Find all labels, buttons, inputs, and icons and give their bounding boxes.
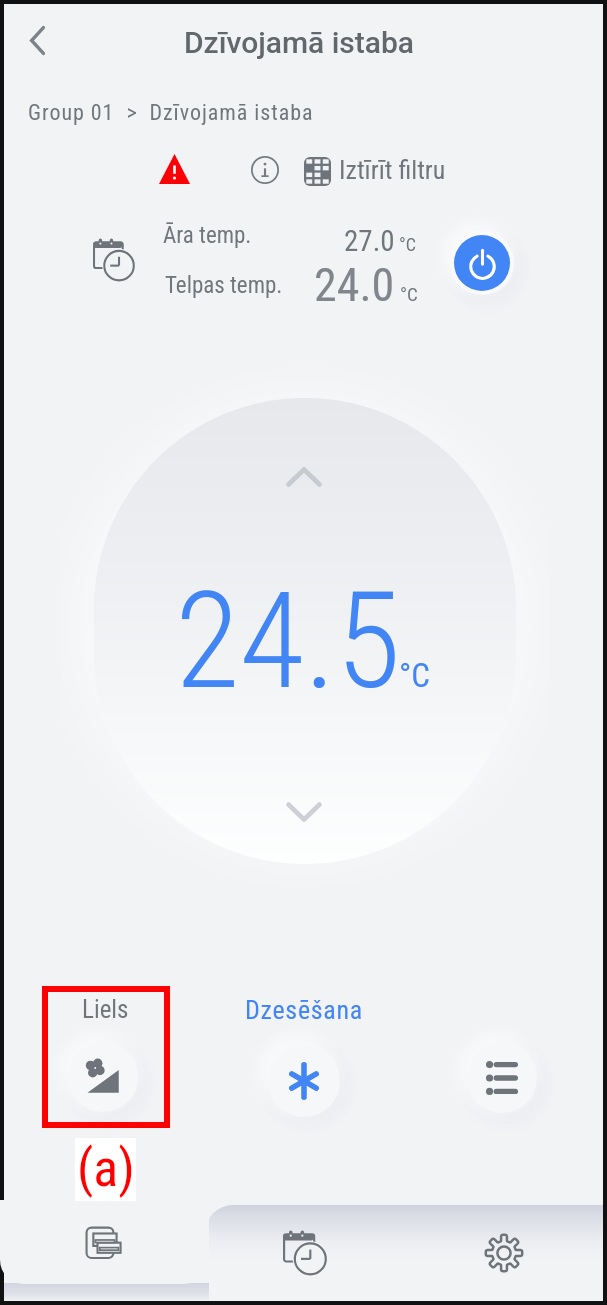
button[interactable]: Schedule [205, 1208, 404, 1298]
staticText: Āra temp. [163, 222, 252, 249]
button[interactable]: Information [243, 148, 287, 192]
staticText: 24.0 [314, 258, 395, 312]
button[interactable]: Liels [42, 986, 169, 1127]
button[interactable]: Decrease temperature [281, 796, 327, 828]
button[interactable]: Back [9, 12, 65, 68]
staticText: 27.0 [344, 224, 395, 258]
staticText: °C [400, 283, 418, 305]
staticText: Group 01 > Dzīvojamā istaba [28, 100, 314, 126]
staticText: °C [399, 656, 431, 695]
staticText: Telpas temp. [165, 272, 283, 299]
button[interactable]: Dzesēšana [236, 986, 372, 1117]
staticText: Iztīrīt filtru [339, 155, 446, 185]
button[interactable]: Fan speed [68, 1042, 138, 1112]
button[interactable]: Power [454, 235, 510, 291]
button[interactable]: Settings [404, 1208, 603, 1298]
button[interactable]: More options [467, 1043, 537, 1113]
staticText: Dzesēšana [245, 995, 363, 1025]
button[interactable]: Devices [4, 1205, 205, 1283]
staticText: Dzīvojamā istaba [184, 25, 414, 60]
staticText: 24.5 [175, 564, 401, 720]
staticText: °C [399, 234, 416, 255]
staticText: (a) [77, 1138, 135, 1199]
staticText: Liels [82, 995, 129, 1024]
button[interactable]: Warning [148, 146, 200, 192]
button[interactable]: Increase temperature [281, 461, 327, 493]
button[interactable]: Iztīrīt filtru [296, 146, 450, 196]
